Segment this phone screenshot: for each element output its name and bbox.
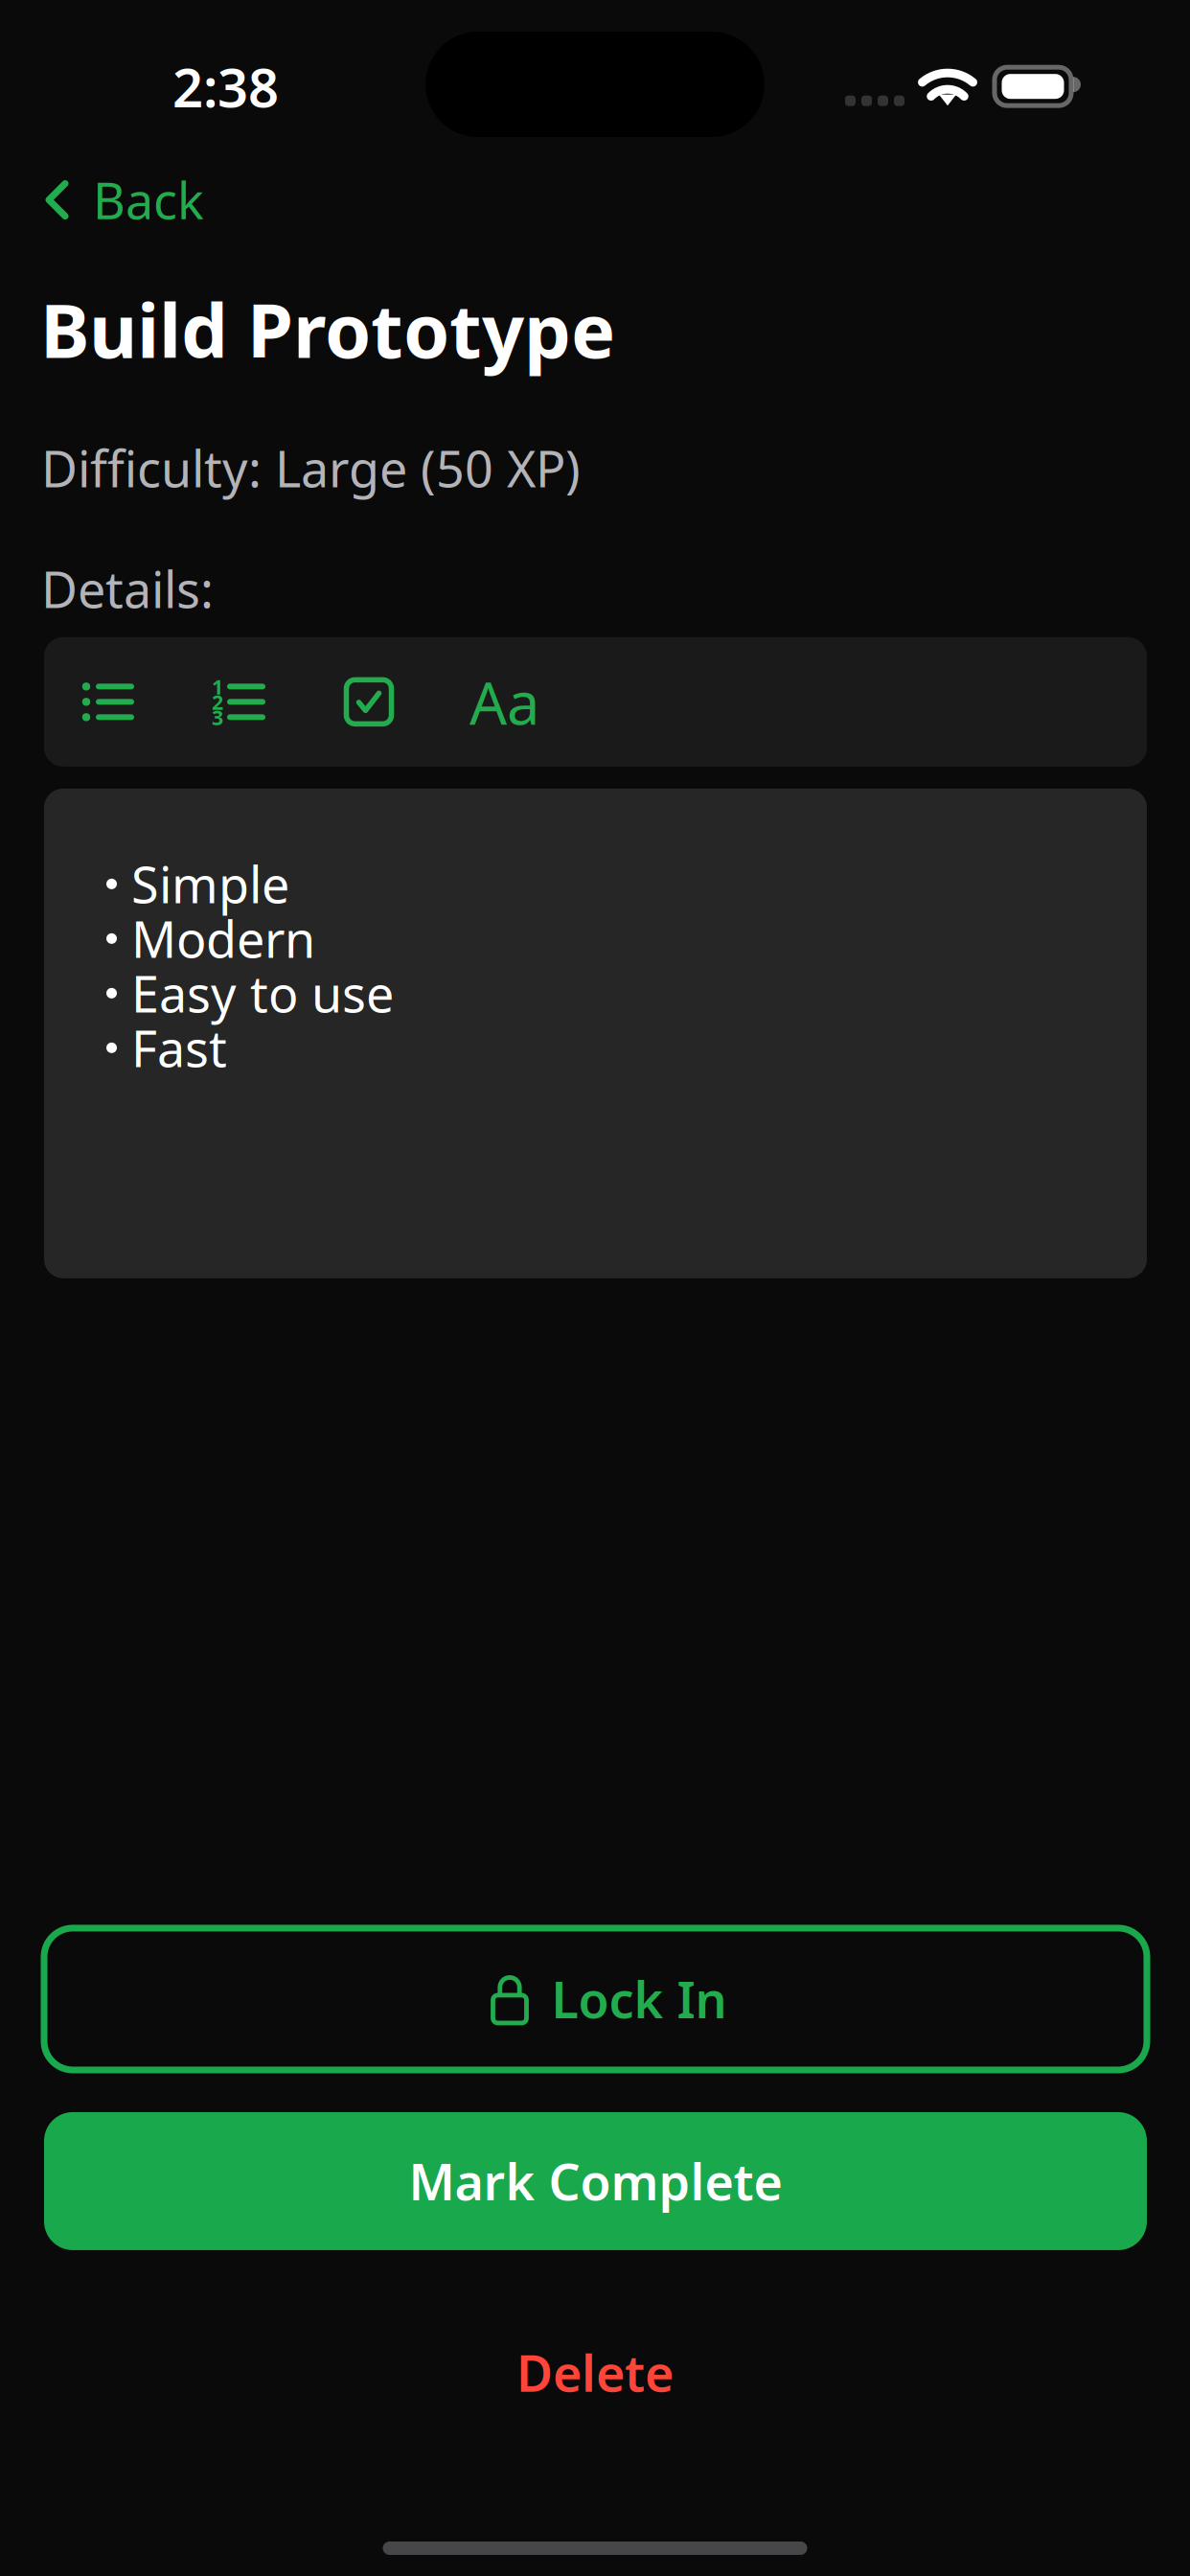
button[interactable]: Lock In	[44, 1928, 1147, 2070]
staticText: 2:38	[172, 51, 279, 122]
button[interactable]: Checklist	[346, 680, 392, 724]
button[interactable]: Back	[0, 153, 239, 246]
staticText: 3	[212, 704, 223, 731]
button[interactable]: Mark Complete	[44, 2112, 1147, 2250]
button[interactable]: Numbered list	[212, 681, 263, 723]
staticText: Modern	[131, 905, 315, 972]
staticText: 2	[212, 688, 223, 715]
staticText: Aa	[469, 663, 539, 741]
staticText: Back	[93, 167, 204, 233]
staticText: Simple	[131, 851, 289, 917]
button[interactable]: Bulleted list	[82, 682, 134, 722]
button[interactable]: Text style	[469, 674, 539, 730]
staticText: Build Prototype	[40, 280, 615, 378]
staticText: Difficulty: Large (50 XP)	[41, 435, 581, 501]
staticText: Lock In	[551, 1966, 727, 2032]
staticText: Delete	[516, 2339, 674, 2405]
staticText: Details:	[41, 556, 214, 622]
staticText: Fast	[131, 1015, 227, 1081]
staticText: Easy to use	[131, 960, 394, 1026]
staticText: 1	[212, 673, 223, 700]
button[interactable]: Delete	[0, 2295, 1190, 2449]
staticText: Mark Complete	[409, 2148, 782, 2214]
